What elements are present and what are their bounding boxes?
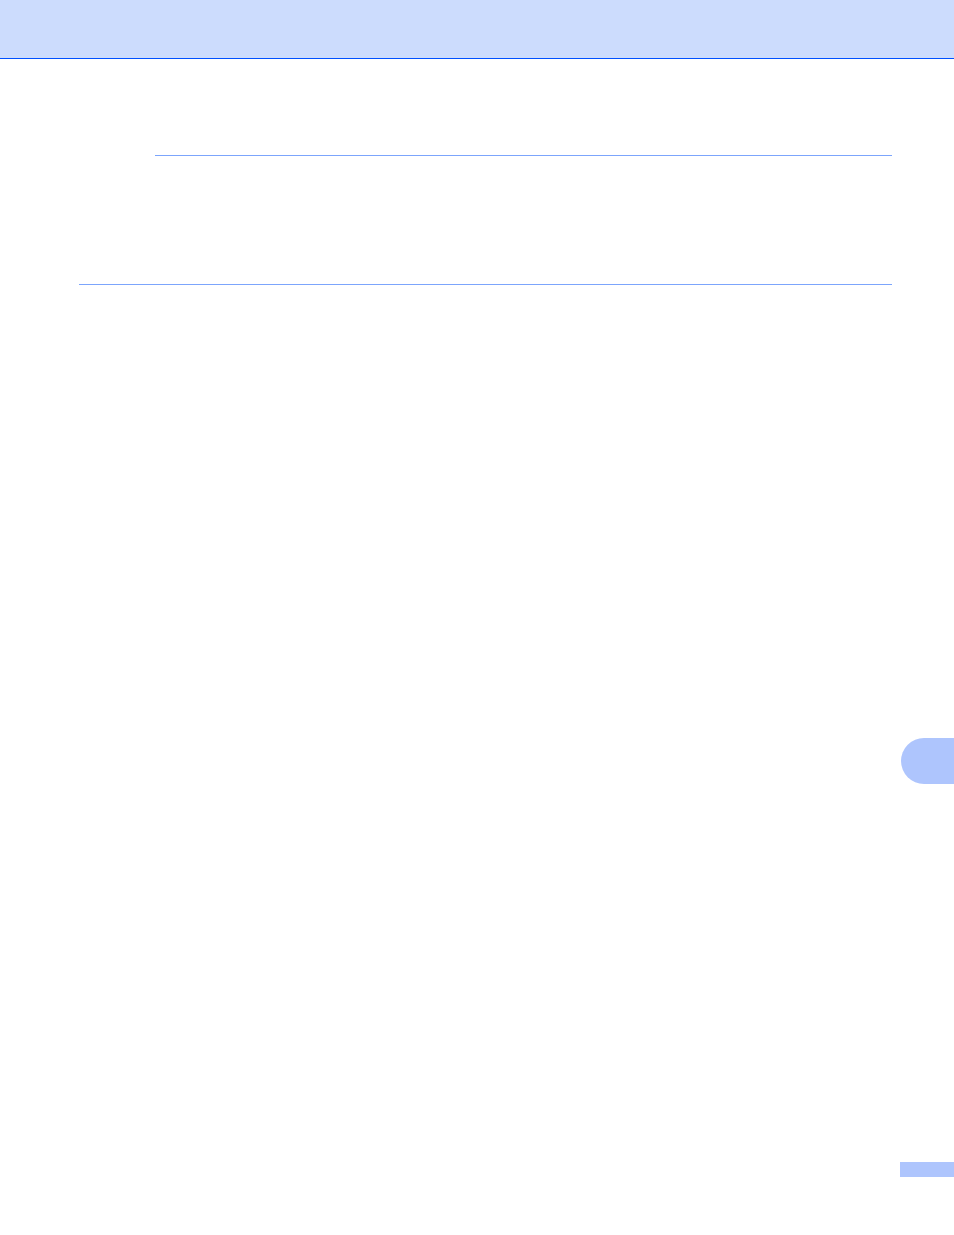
button[interactable]: Scroll position [901,738,954,784]
